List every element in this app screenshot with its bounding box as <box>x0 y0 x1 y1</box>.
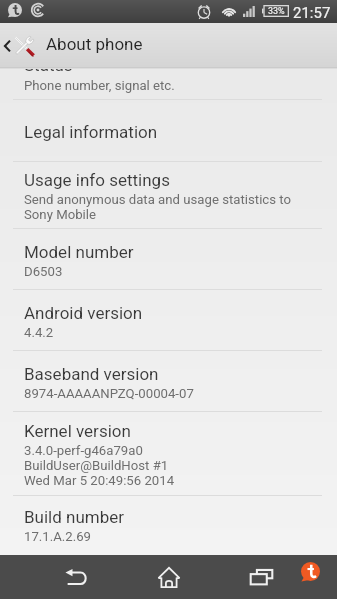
button[interactable]: Notification <box>294 555 326 599</box>
button[interactable]: Legal information <box>0 100 337 161</box>
staticText: D6503 <box>24 264 63 279</box>
button[interactable]: Build number <box>0 496 337 553</box>
staticText: Kernel version <box>24 421 131 441</box>
staticText: Status <box>24 55 73 75</box>
staticText: 3.4.0-perf-g46a79a0 BuildUser@BuildHost … <box>24 443 175 488</box>
button[interactable]: Back <box>47 555 104 599</box>
staticText: Model number <box>24 242 134 262</box>
staticText: Phone number, signal etc. <box>24 78 175 93</box>
staticText: Android version <box>24 303 143 323</box>
staticText: About phone <box>46 34 143 54</box>
button[interactable]: Recent apps <box>233 555 290 599</box>
button[interactable]: Model number <box>0 229 337 289</box>
button[interactable]: Baseband version <box>0 351 337 411</box>
staticText: 21:57 <box>293 4 331 22</box>
button[interactable]: Usage info settings <box>0 162 337 228</box>
staticText: 17.1.A.2.69 <box>24 529 91 544</box>
staticText: Legal information <box>24 122 158 142</box>
button[interactable]: Kernel version <box>0 412 337 495</box>
staticText: 8974-AAAAANPZQ-00004-07 <box>24 386 194 401</box>
staticText: Build number <box>24 507 125 527</box>
staticText: 4.4.2 <box>24 325 54 340</box>
staticText: Send anonymous data and usage statistics… <box>24 192 292 222</box>
button[interactable]: Home <box>140 555 197 599</box>
button[interactable]: Android version <box>0 290 337 350</box>
staticText: Usage info settings <box>24 170 170 190</box>
staticText: Baseband version <box>24 364 159 384</box>
button[interactable]: About phone <box>0 23 337 67</box>
staticText: 33% <box>268 6 285 17</box>
button[interactable]: Status <box>0 23 337 99</box>
